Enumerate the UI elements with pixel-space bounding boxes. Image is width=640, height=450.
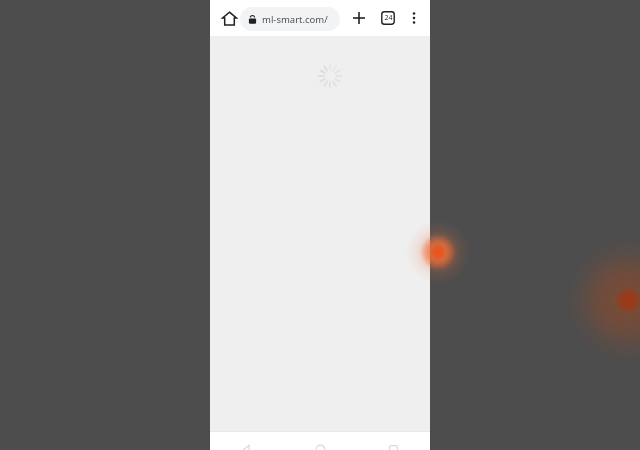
staticText: 24 xyxy=(384,13,393,23)
button[interactable]: Home xyxy=(215,4,243,32)
button[interactable]: New tab xyxy=(345,4,373,32)
staticText: ml-smart.com/#/ xyxy=(262,13,334,26)
button[interactable]: Home xyxy=(284,432,357,450)
button[interactable]: More options xyxy=(400,4,428,32)
button[interactable]: Back xyxy=(210,432,284,450)
button[interactable]: Recent apps xyxy=(357,432,430,450)
button[interactable]: ml-smart.com/#/ xyxy=(240,7,340,31)
button[interactable]: Chat xyxy=(406,220,470,284)
button[interactable]: Switch tabs, 24 open tabs xyxy=(374,4,402,32)
